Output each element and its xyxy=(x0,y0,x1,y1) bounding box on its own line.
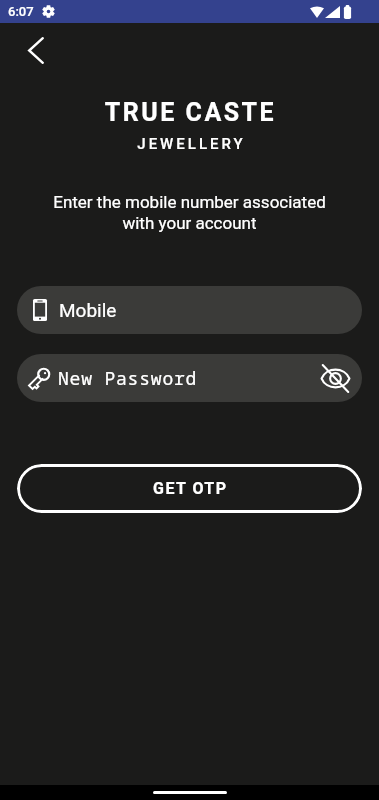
button[interactable]: Back xyxy=(14,28,58,72)
button[interactable]: Show password xyxy=(320,363,350,393)
staticText: New Password xyxy=(58,366,198,391)
staticText: TRUE CASTE xyxy=(1,98,379,127)
staticText: JEWELLERY xyxy=(2,135,379,153)
staticText: Enter the mobile number associated with … xyxy=(40,192,339,234)
button[interactable]: Mobile xyxy=(17,286,362,334)
button[interactable]: GET OTP xyxy=(17,464,362,513)
staticText: GET OTP xyxy=(153,479,228,498)
staticText: Mobile xyxy=(59,299,117,321)
button[interactable]: New Password xyxy=(17,354,362,402)
staticText: 6:07 xyxy=(8,4,34,19)
